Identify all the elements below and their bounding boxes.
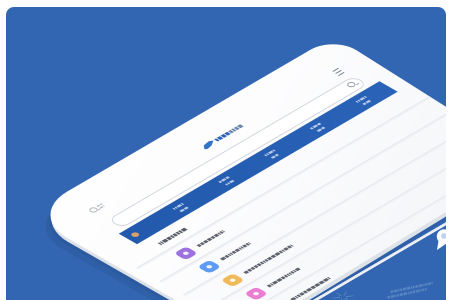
button[interactable]: Category 1 [112, 196, 158, 226]
button[interactable]: Service 4 [229, 271, 349, 293]
button[interactable]: Service 3 [206, 258, 326, 280]
button[interactable]: Category 4 [250, 115, 296, 145]
button[interactable]: Service 2 [183, 245, 303, 267]
button[interactable]: Menu [325, 60, 355, 82]
button[interactable]: Category 2 [158, 169, 204, 199]
button[interactable]: Category 5 [296, 88, 342, 118]
button[interactable]: Search [90, 196, 124, 222]
button[interactable]: Search field [108, 76, 370, 226]
button[interactable]: Service 1 [160, 232, 280, 254]
button[interactable]: Category 3 [204, 142, 250, 172]
button[interactable]: Home [186, 122, 248, 156]
